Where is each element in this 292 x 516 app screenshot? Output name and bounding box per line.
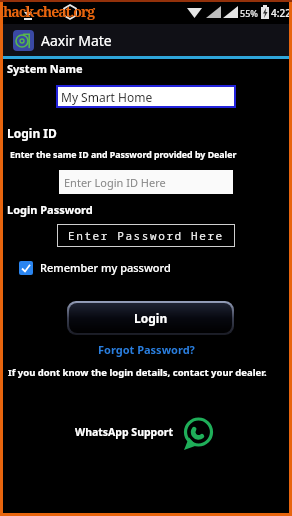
staticText: 55% [240,7,258,19]
staticText: If you dont know the login details, cont… [8,366,267,379]
staticText: hack-cheat.org [3,2,95,21]
staticText: Enter Password Here [68,228,224,243]
button[interactable]: Remember my password [19,260,171,275]
staticText: My Smart Home [61,89,153,105]
staticText: Remember my password [40,260,171,275]
staticText: WhatsApp Support [75,425,174,439]
staticText: Login Password [7,202,93,217]
staticText: Enter Login ID Here [64,175,166,190]
button[interactable]: WhatsApp Support [75,417,217,453]
button[interactable]: My Smart Home [56,85,236,108]
staticText: System Name [7,61,83,76]
button[interactable]: Enter Login ID Here [59,170,233,194]
button[interactable]: Forgot Password? [98,342,195,357]
button[interactable]: Enter Password Here [57,224,235,247]
staticText: 4:22 [271,6,291,20]
button[interactable]: Login [69,303,232,333]
staticText: Enter the same ID and Password provided … [10,149,237,161]
staticText: Login ID [7,125,57,141]
staticText: Aaxir Mate [41,31,112,50]
staticText: Login [134,310,168,326]
